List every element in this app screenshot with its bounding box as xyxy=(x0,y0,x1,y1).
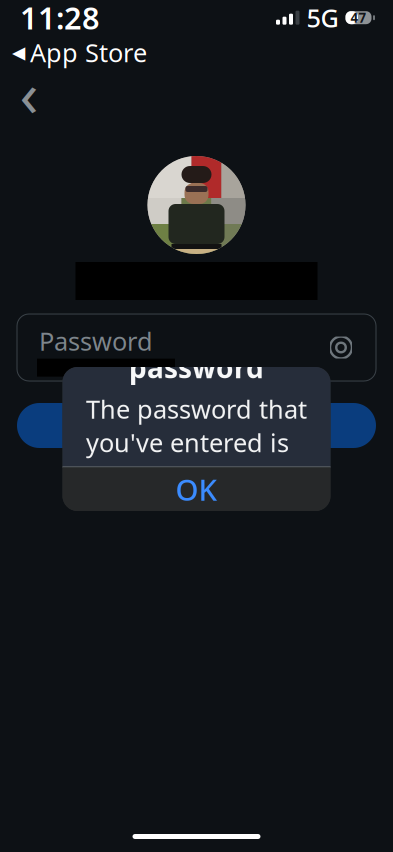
staticText: Incorrect password xyxy=(129,312,264,386)
staticText: The password that you've entered is xyxy=(86,392,307,459)
staticText: Password xyxy=(39,324,153,358)
button[interactable]: OK xyxy=(62,467,330,511)
staticText: incorrect. Please try again. xyxy=(79,465,313,533)
staticText: ‹ xyxy=(19,52,38,134)
button[interactable]: Sign in xyxy=(0,403,393,448)
staticText: OK xyxy=(175,470,217,509)
button[interactable]: Back xyxy=(6,70,52,116)
staticText: ◀ xyxy=(12,43,25,62)
staticText: 11:28 xyxy=(20,0,100,38)
staticText: 47 xyxy=(350,9,366,26)
button[interactable]: Password xyxy=(0,314,393,381)
staticText: 5G xyxy=(306,1,338,34)
staticText: App Store xyxy=(30,36,147,69)
